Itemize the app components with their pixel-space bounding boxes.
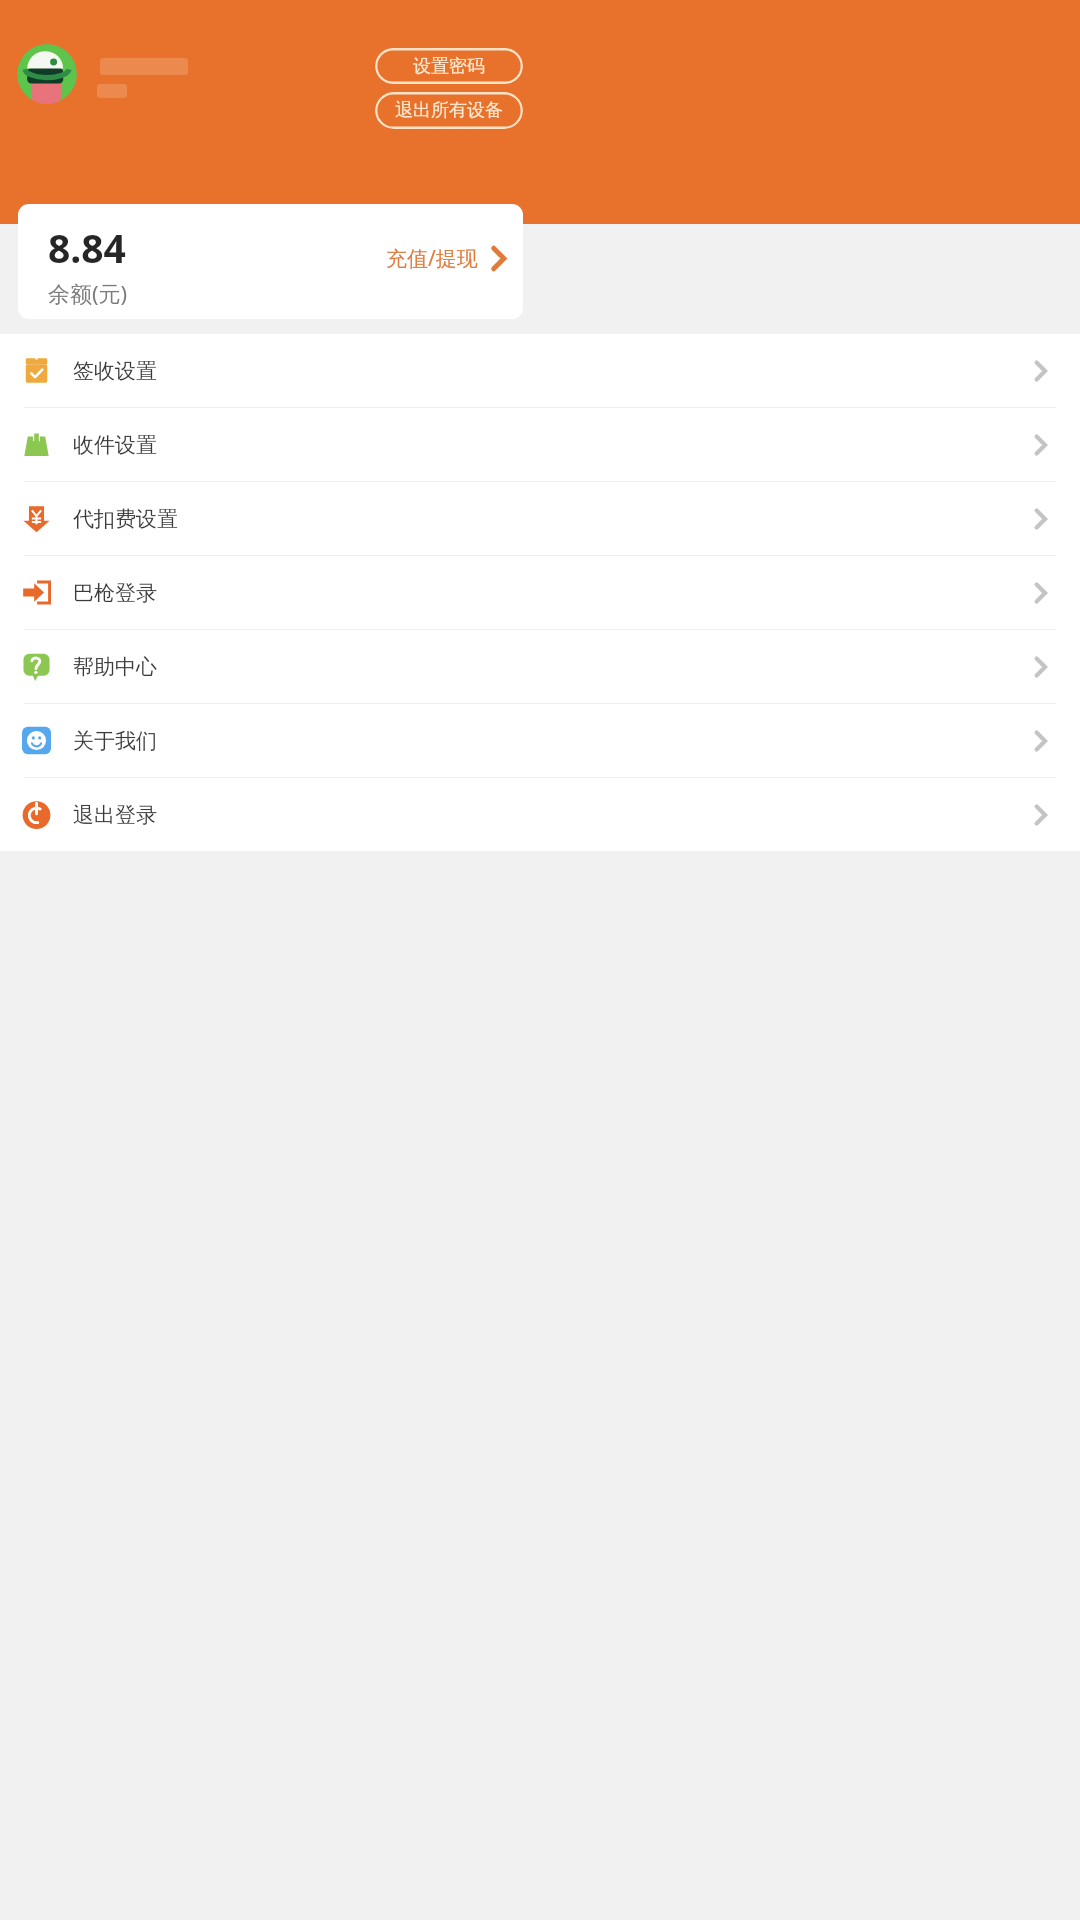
staticText: 退出所有设备 (395, 99, 503, 122)
button[interactable]: 帮助中心 (0, 630, 1080, 703)
staticText: 巴枪登录 (73, 580, 157, 606)
button[interactable]: 收件设置 (0, 408, 1080, 481)
staticText: 退出登录 (73, 802, 157, 828)
button[interactable]: 代扣费设置 (0, 482, 1080, 555)
staticText: 签收设置 (73, 358, 157, 384)
button[interactable]: 充值/提现 (386, 244, 506, 273)
button[interactable]: 退出所有设备 (375, 92, 523, 129)
staticText: 代扣费设置 (73, 506, 178, 532)
staticText: 8.84 (48, 221, 126, 274)
button[interactable]: Profile avatar (17, 44, 77, 104)
button[interactable]: 退出登录 (0, 778, 1080, 851)
button[interactable]: 关于我们 (0, 704, 1080, 777)
staticText: 帮助中心 (73, 654, 157, 680)
staticText: 余额(元) (48, 278, 128, 308)
staticText: 关于我们 (73, 728, 157, 754)
button[interactable]: 巴枪登录 (0, 556, 1080, 629)
staticText: 充值/提现 (386, 244, 478, 273)
staticText: 收件设置 (73, 432, 157, 458)
button[interactable]: 签收设置 (0, 334, 1080, 407)
button[interactable]: 设置密码 (375, 48, 523, 84)
staticText: 设置密码 (413, 55, 485, 78)
